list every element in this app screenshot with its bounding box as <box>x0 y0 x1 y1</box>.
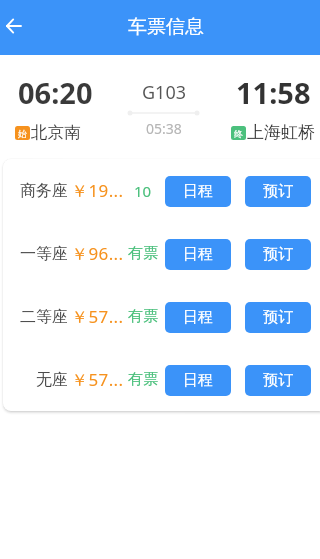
staticText: 无座 <box>36 370 68 390</box>
staticText: 日程 <box>183 371 213 390</box>
button[interactable]: 日程 <box>165 239 231 270</box>
staticText: 预订 <box>263 371 293 390</box>
staticText: 有票 <box>128 244 158 263</box>
button[interactable]: 日程 <box>165 365 231 396</box>
staticText: 11:58 <box>236 73 311 112</box>
staticText: 北京南 <box>31 122 81 143</box>
staticText: 预订 <box>263 245 293 264</box>
button[interactable]: 预订 <box>245 365 311 396</box>
staticText: ￥19... <box>71 179 124 202</box>
staticText: 预订 <box>263 308 293 327</box>
staticText: 一等座 <box>20 244 68 264</box>
button[interactable]: 预订 <box>245 239 311 270</box>
staticText: 10 <box>134 181 152 201</box>
staticText: 有票 <box>128 307 158 326</box>
staticText: 日程 <box>183 308 213 327</box>
staticText: 上海虹桥 <box>247 122 315 143</box>
staticText: 终 <box>234 128 243 139</box>
staticText: ￥57... <box>71 368 124 391</box>
button[interactable]: 预订 <box>245 302 311 333</box>
staticText: 有票 <box>128 370 158 389</box>
button[interactable]: 预订 <box>245 176 311 207</box>
staticText: ￥57... <box>71 305 124 328</box>
staticText: 车票信息 <box>128 15 204 39</box>
button[interactable]: 日程 <box>165 176 231 207</box>
button[interactable]: 日程 <box>165 302 231 333</box>
staticText: ￥96... <box>71 242 124 265</box>
staticText: 05:38 <box>146 119 182 138</box>
staticText: 日程 <box>183 182 213 201</box>
staticText: 日程 <box>183 245 213 264</box>
staticText: 预订 <box>263 182 293 201</box>
staticText: 二等座 <box>20 307 68 327</box>
staticText: 始 <box>18 128 27 139</box>
staticText: 商务座 <box>20 181 68 201</box>
button[interactable]: Back <box>0 7 32 45</box>
staticText: 06:20 <box>18 73 93 112</box>
staticText: G103 <box>142 80 186 105</box>
